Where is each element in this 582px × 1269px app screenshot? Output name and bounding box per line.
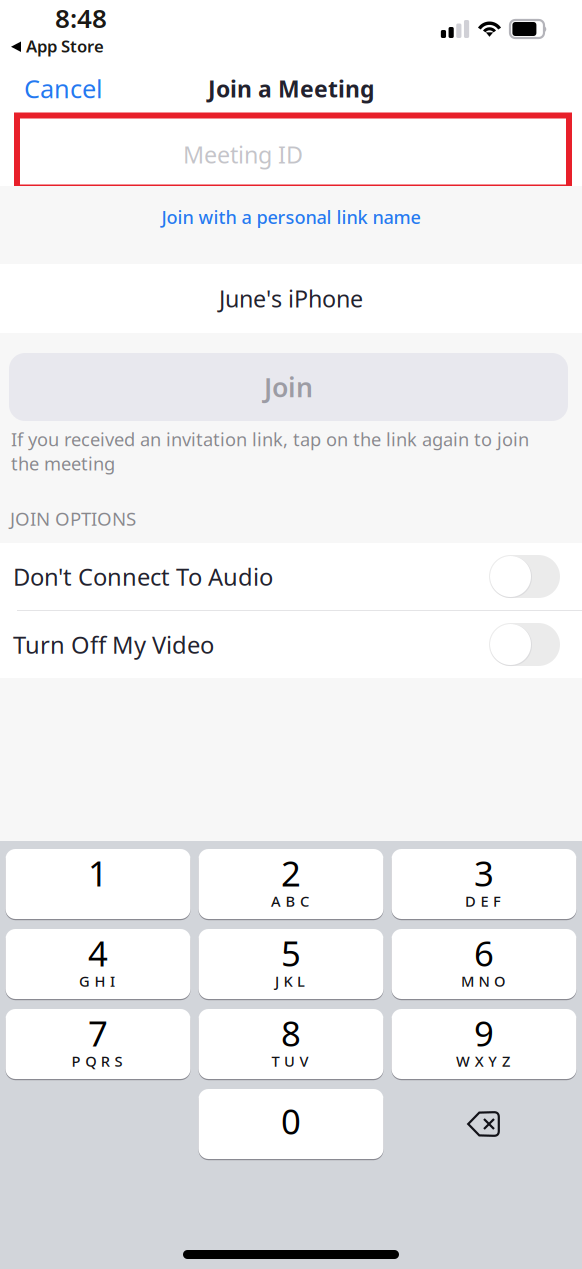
staticText: JOIN OPTIONS — [10, 506, 136, 531]
staticText: Join with a personal link name — [161, 205, 420, 229]
button[interactable]: 3 — [391, 849, 576, 919]
staticText: GHI — [79, 971, 115, 991]
button[interactable]: 5 — [198, 929, 383, 999]
staticText: 8 — [281, 1010, 301, 1056]
staticText: Turn Off My Video — [13, 629, 214, 660]
staticText: 4 — [88, 930, 108, 976]
staticText: 0 — [281, 1098, 301, 1144]
staticText: Join a Meeting — [208, 73, 374, 104]
button[interactable]: 1 — [5, 849, 190, 919]
staticText: Cancel — [24, 72, 103, 105]
button[interactable]: 9 — [391, 1009, 576, 1079]
button[interactable]: Join — [9, 353, 568, 421]
button[interactable]: 8 — [198, 1009, 383, 1079]
staticText: 3 — [474, 850, 494, 896]
staticText: Join — [264, 369, 313, 405]
button[interactable]: 0 — [198, 1089, 383, 1159]
staticText: 8:48 — [55, 1, 107, 35]
staticText: 1 — [88, 850, 108, 896]
button[interactable]: Don't Connect To Audio — [0, 543, 582, 610]
staticText: 9 — [474, 1010, 494, 1056]
button[interactable]: 7 — [5, 1009, 190, 1079]
staticText: 2 — [281, 850, 301, 896]
staticText: 5 — [281, 930, 301, 976]
staticText: June's iPhone — [219, 283, 363, 314]
button[interactable]: 4 — [5, 929, 190, 999]
button[interactable]: 6 — [391, 929, 576, 999]
button[interactable]: Join with a personal link name — [149, 195, 432, 239]
staticText: If you received an invitation link, tap … — [11, 427, 529, 475]
button[interactable]: Cancel — [0, 64, 119, 112]
staticText: JKL — [275, 971, 305, 991]
staticText: WXYZ — [456, 1051, 510, 1071]
button[interactable]: Delete — [391, 1089, 576, 1159]
staticText: Meeting ID — [183, 139, 303, 170]
staticText: Don't Connect To Audio — [13, 561, 273, 592]
staticText: App Store — [26, 35, 104, 57]
staticText: 7 — [88, 1010, 108, 1056]
button[interactable]: 2 — [198, 849, 383, 919]
staticText: ABC — [271, 891, 309, 911]
staticText: DEF — [465, 891, 501, 911]
staticText: TUV — [271, 1051, 309, 1071]
staticText: 6 — [474, 930, 494, 976]
button[interactable]: Turn Off My Video — [0, 611, 582, 678]
staticText: MNO — [461, 971, 505, 991]
staticText: PQRS — [72, 1051, 122, 1071]
